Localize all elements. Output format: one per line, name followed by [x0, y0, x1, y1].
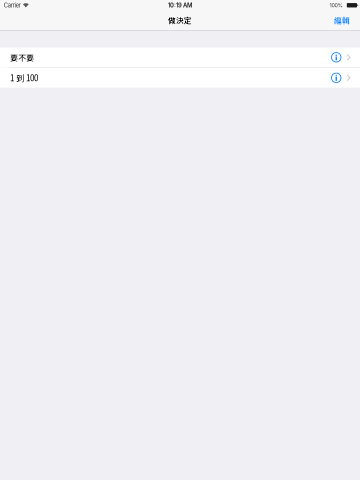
staticText: Carrier: [4, 2, 21, 9]
button[interactable]: 編輯: [329, 10, 354, 30]
staticText: 做決定: [168, 14, 192, 25]
staticText: 要不要: [10, 51, 34, 63]
button[interactable]: 1 到 100: [0, 68, 360, 88]
staticText: 10:19 AM: [168, 2, 192, 9]
staticText: 編輯: [334, 14, 350, 26]
button[interactable]: More Info: [331, 73, 341, 83]
button[interactable]: More Info: [331, 52, 341, 62]
staticText: 100%: [330, 2, 343, 8]
button[interactable]: 要不要: [0, 47, 360, 67]
staticText: 1 到 100: [10, 72, 38, 84]
